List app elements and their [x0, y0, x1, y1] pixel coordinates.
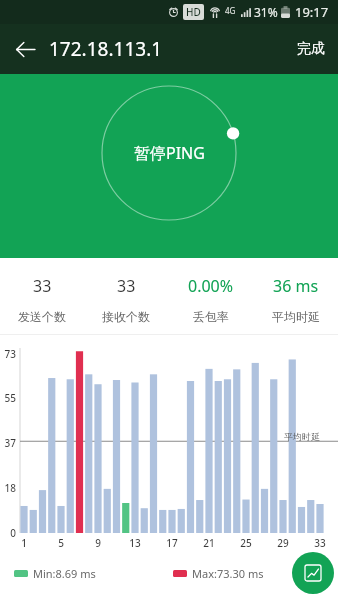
button[interactable]: Show chart: [292, 552, 334, 594]
staticText: 29: [274, 536, 292, 550]
staticText: 5: [52, 536, 70, 550]
button[interactable]: 33: [0, 268, 84, 324]
staticText: 33: [33, 275, 52, 297]
staticText: HD: [186, 5, 201, 19]
staticText: 36 ms: [273, 275, 319, 297]
button[interactable]: 0.00%: [168, 268, 253, 324]
staticText: 1: [15, 536, 33, 550]
staticText: 0: [0, 526, 16, 540]
staticText: 55: [0, 391, 16, 405]
staticText: 发送个数: [18, 309, 66, 324]
staticText: 暂停PING: [134, 142, 205, 164]
staticText: 17: [163, 536, 181, 550]
staticText: 33: [117, 275, 136, 297]
staticText: 19:17: [295, 3, 329, 21]
staticText: 完成: [297, 40, 325, 58]
staticText: Min:8.69 ms: [33, 566, 96, 581]
staticText: 接收个数: [102, 309, 150, 324]
button[interactable]: 完成: [284, 28, 338, 70]
staticText: 平均时延: [272, 309, 320, 324]
staticText: 21: [200, 536, 218, 550]
staticText: 9: [89, 536, 107, 550]
staticText: 平均时延: [284, 431, 320, 442]
staticText: 172.18.113.1: [49, 36, 163, 62]
staticText: 33: [311, 536, 329, 550]
staticText: 4G: [225, 5, 236, 16]
staticText: 31%: [254, 4, 278, 20]
button[interactable]: 33: [84, 268, 168, 324]
staticText: 0.00%: [188, 275, 234, 297]
staticText: 25: [237, 536, 255, 550]
staticText: Max:73.30 ms: [192, 566, 264, 581]
staticText: 13: [126, 536, 144, 550]
staticText: 18: [0, 481, 16, 495]
staticText: 丢包率: [193, 309, 229, 324]
staticText: 37: [0, 436, 16, 450]
staticText: 73: [0, 347, 16, 361]
button[interactable]: 36 ms: [253, 268, 338, 324]
button[interactable]: Back: [5, 29, 45, 69]
button[interactable]: 暂停PING: [99, 83, 239, 223]
